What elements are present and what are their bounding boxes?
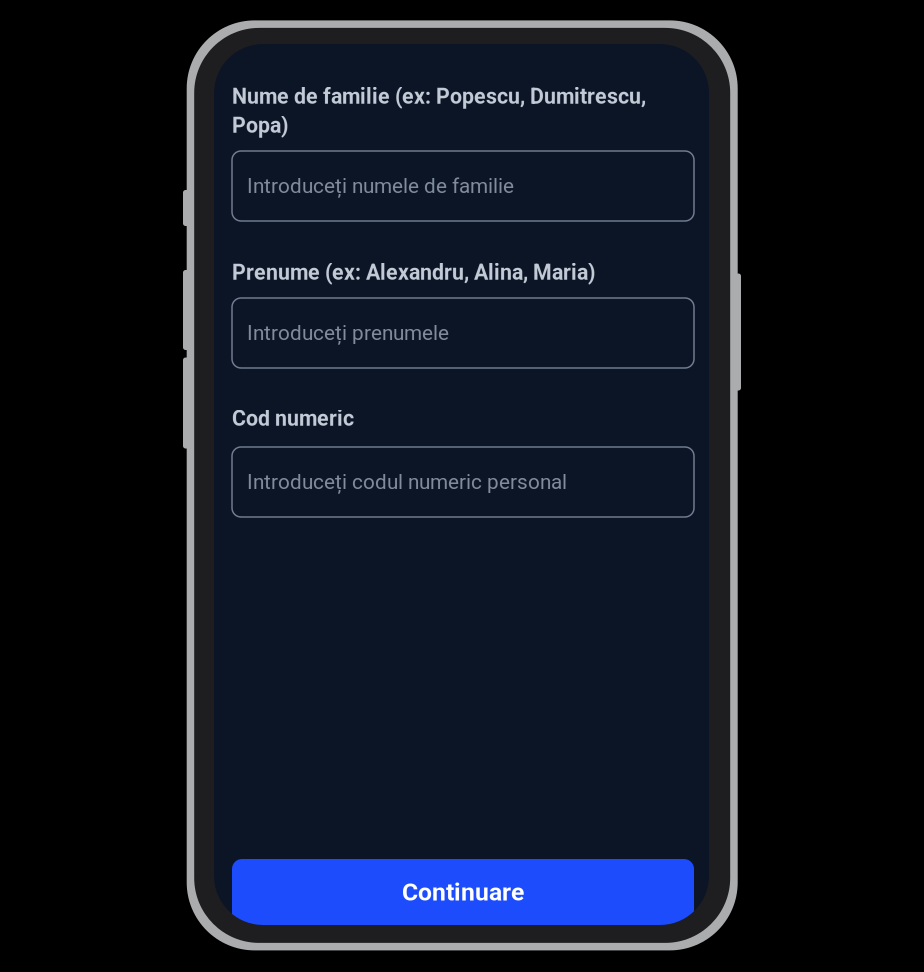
button[interactable]: Nume de familie (ex: Popescu, Dumitrescu…	[232, 151, 694, 221]
button[interactable]: Ring/Silent switch	[183, 190, 195, 226]
staticText: Cod numeric	[232, 406, 354, 431]
button[interactable]: Continuare	[232, 859, 694, 925]
button[interactable]: Prenume (ex: Alexandru, Alina, Maria)	[232, 298, 694, 368]
staticText: Introduceți prenumele	[247, 321, 449, 345]
staticText: Continuare	[402, 877, 524, 906]
button[interactable]: Side button	[729, 273, 741, 390]
staticText: Prenume (ex: Alexandru, Alina, Maria)	[232, 260, 595, 285]
button[interactable]: Cod numeric	[232, 447, 694, 517]
button[interactable]: Volume up	[183, 270, 195, 350]
staticText: Introduceți codul numeric personal	[247, 470, 567, 494]
staticText: Introduceți numele de familie	[247, 174, 514, 198]
button[interactable]: Volume down	[183, 357, 195, 448]
staticText: Nume de familie (ex: Popescu, Dumitrescu…	[232, 84, 646, 138]
